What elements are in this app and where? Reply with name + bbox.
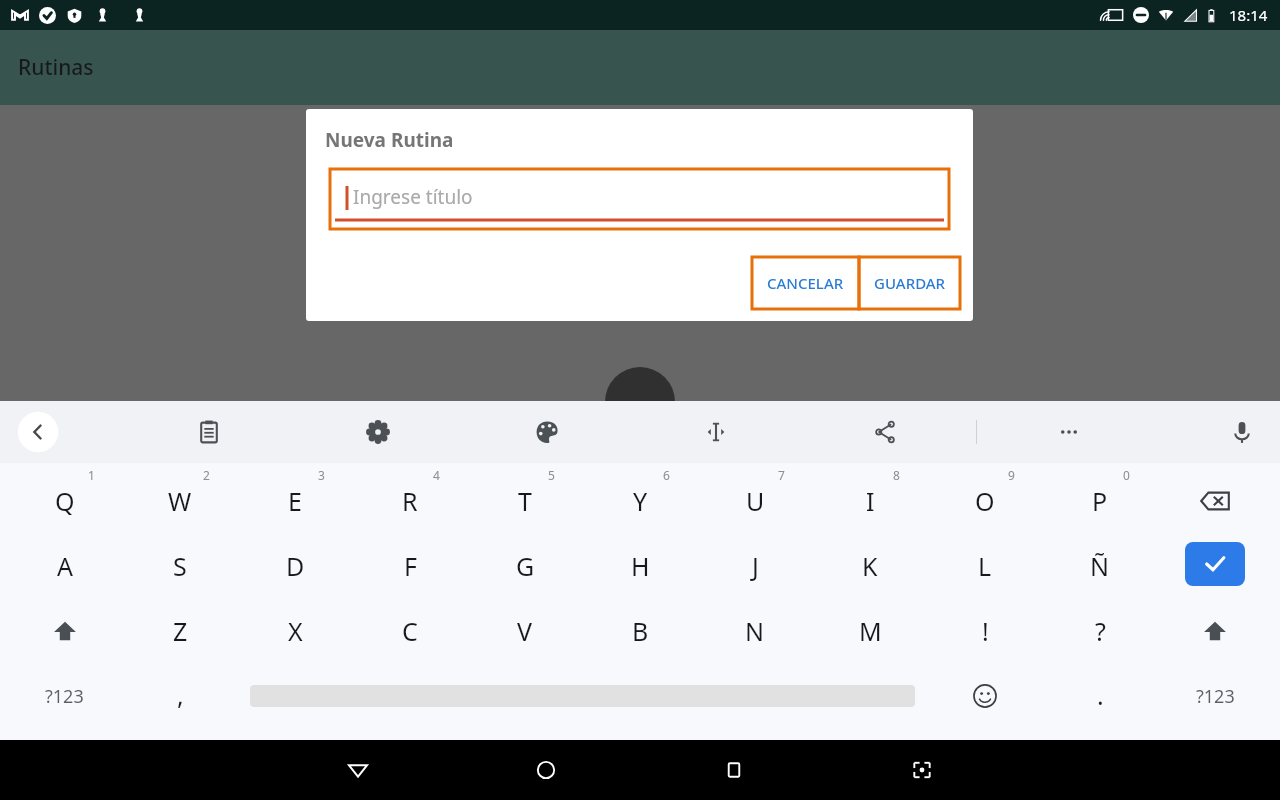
- staticText: 4: [433, 467, 440, 483]
- button[interactable]: Share: [861, 408, 909, 456]
- staticText: 9: [1008, 467, 1015, 483]
- button[interactable]: R: [358, 473, 462, 529]
- button[interactable]: P: [1048, 473, 1152, 529]
- button[interactable]: Screenshot: [892, 746, 952, 794]
- button[interactable]: K: [818, 538, 922, 594]
- button[interactable]: M: [818, 603, 922, 659]
- staticText: H: [631, 549, 650, 583]
- staticText: K: [862, 549, 878, 583]
- button[interactable]: S: [128, 538, 232, 594]
- button[interactable]: J: [703, 538, 807, 594]
- button[interactable]: Y: [588, 473, 692, 529]
- staticText: Ingrese título: [353, 184, 473, 210]
- staticText: Z: [173, 614, 188, 648]
- staticText: T: [518, 484, 532, 518]
- button[interactable]: C: [358, 603, 462, 659]
- button[interactable]: ?: [1048, 603, 1152, 659]
- staticText: ?: [1095, 614, 1106, 648]
- staticText: B: [632, 614, 649, 648]
- staticText: Q: [55, 484, 75, 518]
- button[interactable]: X: [243, 603, 347, 659]
- staticText: I: [866, 484, 875, 518]
- button[interactable]: CANCELAR: [752, 257, 859, 309]
- button[interactable]: ?123: [12, 668, 116, 724]
- button[interactable]: H: [588, 538, 692, 594]
- button[interactable]: Q: [13, 473, 117, 529]
- staticText: U: [746, 484, 765, 518]
- staticText: L: [978, 549, 992, 583]
- staticText: F: [404, 549, 417, 583]
- staticText: !: [982, 614, 989, 648]
- staticText: 3: [318, 467, 325, 483]
- button[interactable]: F: [358, 538, 462, 594]
- button[interactable]: Home: [516, 746, 576, 794]
- button[interactable]: Emoji: [933, 668, 1037, 724]
- button[interactable]: GUARDAR: [859, 257, 960, 309]
- staticText: Nueva Rutina: [325, 127, 454, 153]
- staticText: V: [517, 614, 533, 648]
- staticText: 2: [203, 467, 210, 483]
- button[interactable]: Back: [328, 746, 388, 794]
- staticText: A: [57, 549, 73, 583]
- button[interactable]: Enter: [1185, 542, 1245, 586]
- button[interactable]: ,: [128, 667, 232, 723]
- staticText: W: [168, 484, 192, 518]
- button[interactable]: Recents: [704, 746, 764, 794]
- staticText: 1: [88, 467, 95, 483]
- button[interactable]: ?123: [1163, 668, 1267, 724]
- staticText: J: [752, 549, 759, 583]
- button[interactable]: Clipboard: [185, 408, 233, 456]
- staticText: P: [1092, 484, 1108, 518]
- button[interactable]: D: [243, 538, 347, 594]
- staticText: 6: [663, 467, 670, 483]
- staticText: N: [745, 614, 765, 648]
- button[interactable]: More: [1045, 408, 1093, 456]
- button[interactable]: G: [473, 538, 577, 594]
- staticText: M: [859, 614, 882, 648]
- button[interactable]: Move cursor: [692, 408, 740, 456]
- staticText: GUARDAR: [874, 273, 946, 293]
- staticText: S: [173, 549, 187, 583]
- button[interactable]: A: [13, 538, 117, 594]
- staticText: R: [402, 484, 418, 518]
- staticText: C: [402, 614, 418, 648]
- staticText: G: [516, 549, 535, 583]
- button[interactable]: Shift: [1163, 603, 1267, 659]
- staticText: 5: [548, 467, 555, 483]
- staticText: X: [288, 614, 303, 648]
- button[interactable]: W: [128, 473, 232, 529]
- button[interactable]: Ingrese título: [330, 169, 949, 229]
- button[interactable]: !: [933, 603, 1037, 659]
- button[interactable]: Theme: [523, 408, 571, 456]
- button[interactable]: Backspace: [1163, 473, 1267, 529]
- button[interactable]: I: [818, 473, 922, 529]
- staticText: 18:14: [1229, 5, 1268, 25]
- button[interactable]: Voice input: [1218, 408, 1266, 456]
- staticText: ,: [177, 678, 184, 712]
- button[interactable]: Shift: [13, 603, 117, 659]
- button[interactable]: E: [243, 473, 347, 529]
- button[interactable]: Ñ: [1048, 538, 1152, 594]
- button[interactable]: Settings: [354, 408, 402, 456]
- button[interactable]: V: [473, 603, 577, 659]
- staticText: D: [286, 549, 305, 583]
- button[interactable]: O: [933, 473, 1037, 529]
- staticText: Rutinas: [18, 53, 94, 82]
- staticText: ?123: [1196, 684, 1235, 709]
- staticText: Y: [633, 484, 648, 518]
- button[interactable]: T: [473, 473, 577, 529]
- button[interactable]: Z: [128, 603, 232, 659]
- staticText: O: [975, 484, 995, 518]
- button[interactable]: Add: [605, 367, 675, 437]
- button[interactable]: .: [1048, 667, 1152, 723]
- button[interactable]: N: [703, 603, 807, 659]
- button[interactable]: Back: [14, 408, 62, 456]
- staticText: ?123: [45, 684, 84, 709]
- button[interactable]: L: [933, 538, 1037, 594]
- button[interactable]: B: [588, 603, 692, 659]
- staticText: 8: [893, 467, 900, 483]
- staticText: CANCELAR: [767, 273, 844, 293]
- button[interactable]: U: [703, 473, 807, 529]
- staticText: .: [1097, 678, 1104, 712]
